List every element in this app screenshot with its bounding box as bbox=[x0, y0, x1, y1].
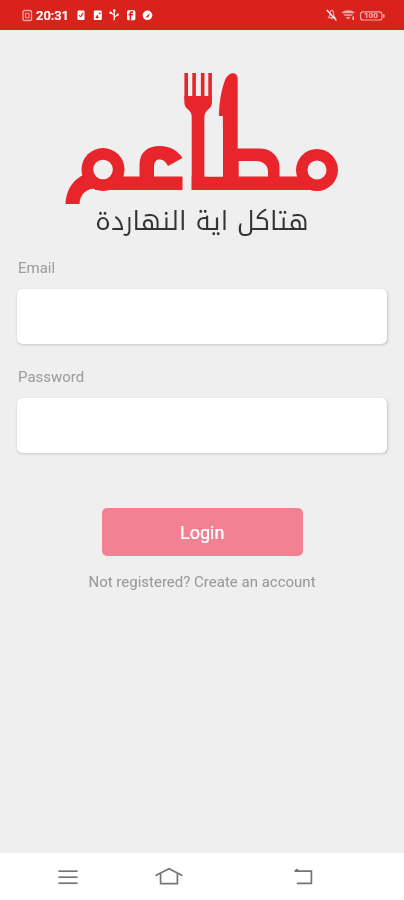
button[interactable]: Recent apps bbox=[0, 853, 136, 900]
staticText: Email bbox=[18, 259, 56, 277]
staticText: Password bbox=[18, 368, 85, 386]
button[interactable]: Home bbox=[136, 853, 202, 900]
button[interactable]: Back bbox=[202, 853, 404, 900]
staticText: Login bbox=[180, 522, 225, 543]
button[interactable]: Not registered? Create an account bbox=[0, 573, 404, 591]
button[interactable]: Login bbox=[102, 508, 303, 556]
staticText: 20:31 bbox=[36, 8, 69, 23]
staticText: هتاكل اية النهاردة bbox=[0, 197, 404, 246]
staticText: 100 bbox=[364, 11, 378, 20]
